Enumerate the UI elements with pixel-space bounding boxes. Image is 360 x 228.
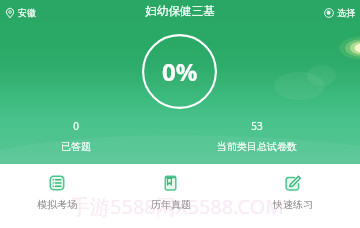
staticText: 当前类目总试卷数 [217,140,297,153]
staticText: 已答题 [61,140,91,153]
button[interactable]: 选择 [320,4,360,21]
staticText: 0% [162,55,198,88]
staticText: 模拟考场 [37,198,77,211]
staticText: 53 [251,119,263,133]
staticText: 快速练习 [273,198,313,211]
staticText: 选择 [337,7,355,18]
button[interactable]: 模拟考场 [17,174,97,212]
staticText: 手游5588网X5588.COM [70,193,284,220]
staticText: 妇幼保健三基 [145,4,216,19]
staticText: 0 [73,119,79,133]
staticText: 安徽 [18,7,36,18]
button[interactable]: 历年真题 [131,174,211,212]
button[interactable]: 快速练习 [253,174,333,212]
button[interactable]: 安徽 [0,4,40,21]
staticText: 历年真题 [151,198,191,211]
